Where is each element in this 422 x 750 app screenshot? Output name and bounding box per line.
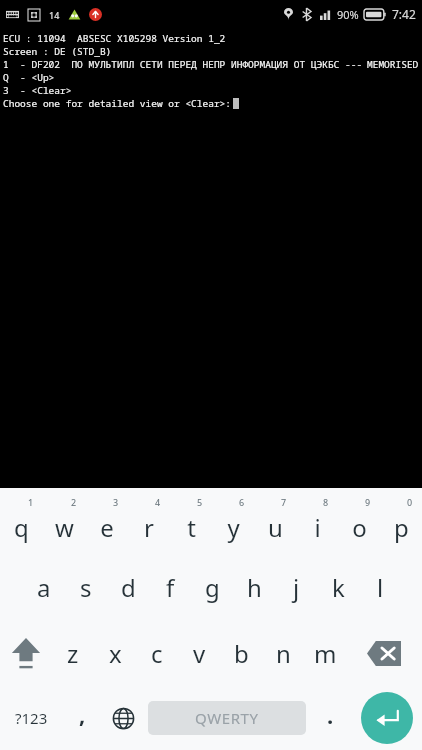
- staticText: c: [151, 637, 163, 670]
- staticText: z: [67, 637, 79, 670]
- staticText: Choose one for detailed view or <Clear>:: [3, 97, 232, 110]
- button[interactable]: x: [94, 620, 136, 686]
- staticText: ,: [79, 699, 86, 729]
- button[interactable]: 4: [128, 488, 170, 554]
- staticText: n: [276, 637, 291, 670]
- staticText: a: [37, 571, 51, 604]
- staticText: b: [234, 637, 249, 670]
- staticText: 2: [71, 496, 77, 508]
- button[interactable]: 6: [212, 488, 254, 554]
- staticText: 8: [323, 496, 329, 508]
- button[interactable]: m: [304, 620, 346, 686]
- button[interactable]: ,: [62, 686, 103, 750]
- button[interactable]: 2: [43, 488, 86, 554]
- staticText: 9: [365, 496, 371, 508]
- staticText: o: [352, 511, 367, 544]
- staticText: p: [394, 511, 409, 544]
- button[interactable]: j: [275, 554, 317, 620]
- staticText: g: [205, 571, 220, 604]
- button[interactable]: 3: [86, 488, 128, 554]
- button[interactable]: 5: [170, 488, 212, 554]
- button[interactable]: b: [220, 620, 262, 686]
- staticText: u: [268, 511, 283, 544]
- staticText: k: [332, 571, 345, 604]
- button[interactable]: 9: [338, 488, 380, 554]
- staticText: r: [144, 511, 154, 544]
- staticText: x: [109, 637, 122, 670]
- staticText: 6: [239, 496, 245, 508]
- staticText: 14: [49, 9, 60, 21]
- button[interactable]: Enter: [361, 692, 413, 744]
- staticText: Q - <Up>: [3, 71, 55, 84]
- button[interactable]: 1: [0, 488, 43, 554]
- staticText: ?123: [15, 708, 48, 728]
- button[interactable]: Shift: [0, 620, 52, 686]
- staticText: QWERTY: [195, 708, 259, 728]
- staticText: w: [55, 511, 74, 544]
- staticText: Screen : DE (STD_B): [3, 45, 112, 58]
- button[interactable]: k: [317, 554, 359, 620]
- staticText: h: [247, 571, 262, 604]
- button[interactable]: Backspace: [346, 620, 422, 686]
- staticText: v: [193, 637, 206, 670]
- button[interactable]: l: [359, 554, 401, 620]
- button[interactable]: g: [191, 554, 233, 620]
- button[interactable]: 8: [296, 488, 338, 554]
- button[interactable]: c: [136, 620, 178, 686]
- staticText: 1 - DF202 ПО МУЛЬТИПЛ СЕТИ ПЕРЕД НЕПР ИН…: [3, 58, 363, 71]
- staticText: q: [14, 511, 29, 544]
- staticText: 1: [28, 496, 34, 508]
- staticText: t: [187, 511, 196, 544]
- staticText: s: [80, 571, 92, 604]
- staticText: 7: [281, 496, 287, 508]
- staticText: 3: [113, 496, 119, 508]
- button[interactable]: s: [65, 554, 107, 620]
- staticText: .: [327, 700, 334, 730]
- button[interactable]: ?123: [0, 686, 62, 750]
- button[interactable]: QWERTY: [148, 701, 306, 735]
- button[interactable]: .: [310, 686, 351, 750]
- button[interactable]: 0: [380, 488, 422, 554]
- staticText: 7:42: [392, 6, 416, 22]
- button[interactable]: z: [52, 620, 94, 686]
- button[interactable]: h: [233, 554, 275, 620]
- staticText: 5: [197, 496, 203, 508]
- staticText: l: [377, 571, 384, 604]
- staticText: j: [293, 571, 300, 604]
- staticText: 3 - <Clear>: [3, 84, 72, 97]
- staticText: e: [100, 511, 114, 544]
- staticText: 0: [407, 496, 413, 508]
- staticText: 4: [155, 496, 161, 508]
- staticText: m: [314, 637, 337, 670]
- staticText: ECU : 11094 ABSESC X105298 Version 1_2: [3, 32, 226, 45]
- button[interactable]: Change language: [103, 686, 144, 750]
- button[interactable]: n: [262, 620, 304, 686]
- staticText: y: [227, 511, 240, 544]
- staticText: f: [166, 571, 175, 604]
- staticText: 90%: [337, 7, 359, 22]
- staticText: MEMORISED: [367, 58, 419, 71]
- button[interactable]: a: [22, 554, 65, 620]
- button[interactable]: f: [149, 554, 191, 620]
- staticText: i: [314, 511, 321, 544]
- button[interactable]: d: [107, 554, 149, 620]
- staticText: d: [121, 571, 136, 604]
- button[interactable]: v: [178, 620, 220, 686]
- button[interactable]: 7: [254, 488, 296, 554]
